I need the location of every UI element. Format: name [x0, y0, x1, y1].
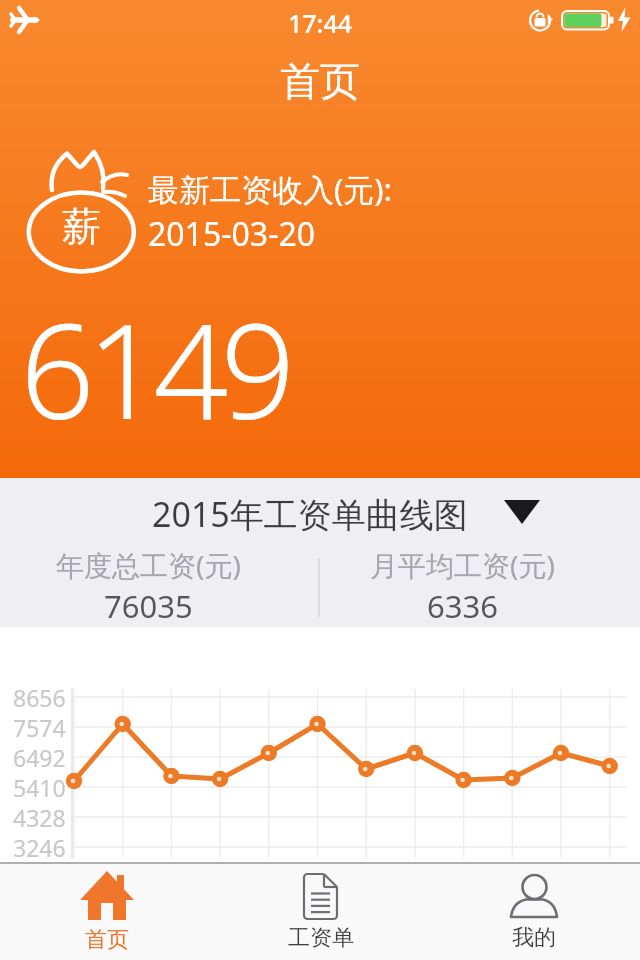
staticText: 5410: [13, 772, 66, 803]
staticText: 年度总工资(元): [56, 546, 241, 584]
staticText: 薪: [62, 202, 101, 251]
button[interactable]: [26, 146, 138, 276]
staticText: 3246: [13, 832, 66, 863]
button[interactable]: 我的: [427, 864, 640, 960]
staticText: 我的: [512, 924, 556, 952]
staticText: 8656: [13, 682, 66, 713]
staticText: 4328: [13, 802, 66, 833]
button[interactable]: 2015年工资单曲线图: [152, 491, 468, 537]
button[interactable]: 首页: [0, 864, 214, 960]
staticText: 7574: [13, 712, 66, 743]
staticText: 2015-03-20: [148, 212, 316, 256]
staticText: 6336: [427, 585, 498, 627]
staticText: 工资单: [288, 924, 354, 952]
staticText: 76035: [104, 585, 193, 627]
button[interactable]: 工资单: [214, 864, 427, 960]
staticText: 首页: [85, 926, 129, 954]
staticText: 6492: [13, 742, 66, 773]
staticText: 首页: [280, 56, 360, 106]
staticText: 月平均工资(元): [370, 546, 555, 584]
staticText: 最新工资收入(元):: [148, 168, 392, 210]
staticText: 6149: [20, 279, 288, 457]
staticText: 17:44: [288, 6, 353, 40]
